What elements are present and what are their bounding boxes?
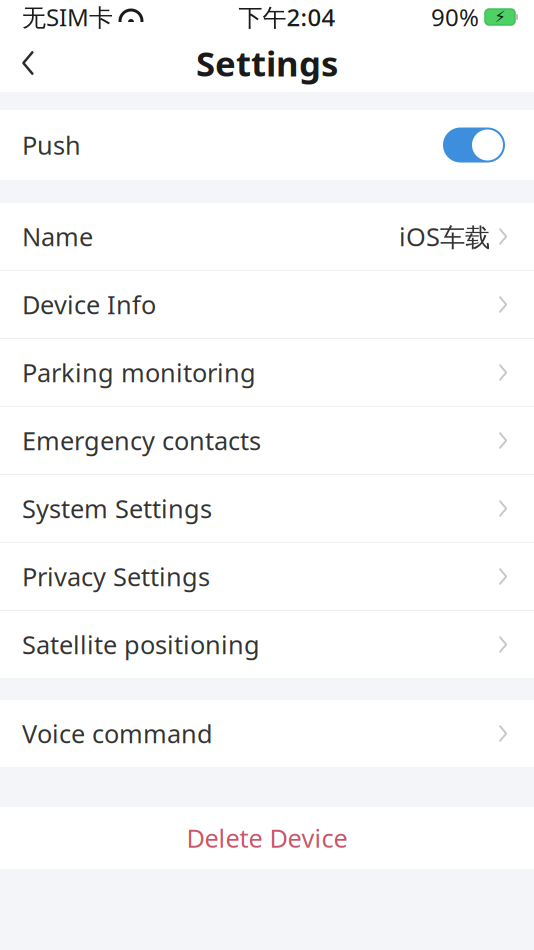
staticText: Push: [22, 128, 81, 162]
staticText: 90%: [431, 1, 479, 33]
button[interactable]: Device Info: [0, 271, 534, 338]
button[interactable]: System Settings: [0, 475, 534, 542]
button[interactable]: Voice command: [0, 700, 534, 767]
button[interactable]: Name: [0, 203, 534, 270]
button[interactable]: Back: [0, 37, 56, 89]
staticText: Delete Device: [186, 821, 347, 855]
staticText: 无SIM卡: [22, 1, 113, 33]
button[interactable]: Delete Device: [0, 807, 534, 869]
button[interactable]: Emergency contacts: [0, 407, 534, 474]
staticText: System Settings: [22, 492, 212, 525]
staticText: ⚡︎: [494, 8, 505, 26]
staticText: Settings: [196, 40, 338, 86]
button[interactable]: Privacy Settings: [0, 543, 534, 610]
button[interactable]: Parking monitoring: [0, 339, 534, 406]
staticText: Emergency contacts: [22, 424, 261, 457]
staticText: Privacy Settings: [22, 560, 210, 593]
staticText: Device Info: [22, 288, 156, 321]
staticText: iOS车载: [399, 220, 490, 253]
staticText: Voice command: [22, 717, 213, 750]
button[interactable]: Satellite positioning: [0, 611, 534, 678]
button[interactable]: Push: [443, 127, 534, 162]
staticText: Name: [22, 220, 93, 253]
staticText: Satellite positioning: [22, 628, 260, 661]
staticText: 下午2:04: [238, 1, 335, 33]
staticText: Parking monitoring: [22, 356, 256, 389]
